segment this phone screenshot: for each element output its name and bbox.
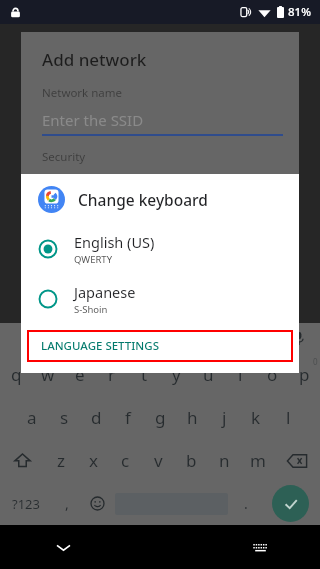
staticText: f <box>125 406 131 429</box>
staticText: ?123 <box>12 495 40 513</box>
staticText: a <box>27 406 37 429</box>
button[interactable]: English (US) <box>21 224 299 274</box>
staticText: v <box>154 449 163 472</box>
staticText: o <box>267 363 278 386</box>
button[interactable]: s <box>48 396 80 439</box>
button[interactable]: Enter <box>272 485 309 522</box>
staticText: 4 <box>121 356 126 367</box>
staticText: r <box>108 363 116 386</box>
button[interactable]: ?123 <box>0 482 52 525</box>
button[interactable]: Shift <box>0 439 45 482</box>
button[interactable]: t <box>128 353 160 396</box>
staticText: x <box>89 449 98 472</box>
staticText: p <box>299 363 310 386</box>
staticText: g <box>155 406 166 429</box>
staticText: 6 <box>185 356 190 367</box>
staticText: l <box>286 406 291 429</box>
button[interactable]: c <box>109 439 142 482</box>
button[interactable]: n <box>208 439 241 482</box>
staticText: LANGUAGE SETTINGS <box>41 338 159 354</box>
button[interactable]: h <box>176 396 208 439</box>
button[interactable]: y <box>160 353 192 396</box>
staticText: j <box>222 406 227 429</box>
staticText: English (US) <box>74 232 155 252</box>
staticText: 81% <box>288 4 311 20</box>
staticText: Enter the SSID <box>42 110 144 130</box>
button[interactable]: b <box>175 439 208 482</box>
staticText: Change keyboard <box>78 189 208 210</box>
button[interactable]: l <box>272 396 304 439</box>
staticText: , <box>65 494 69 513</box>
button[interactable]: z <box>45 439 77 482</box>
button[interactable]: r <box>96 353 128 396</box>
button[interactable]: a <box>16 396 48 439</box>
staticText: k <box>251 406 261 429</box>
staticText: Network name <box>42 85 123 101</box>
button[interactable]: o <box>256 353 288 396</box>
staticText: h <box>187 406 198 429</box>
staticText: 5 <box>153 356 158 367</box>
button[interactable]: i <box>224 353 256 396</box>
staticText: 3 <box>89 356 94 367</box>
staticText: 1 <box>25 356 30 367</box>
staticText: t <box>141 363 148 386</box>
button[interactable]: x <box>77 439 109 482</box>
button[interactable]: LANGUAGE SETTINGS <box>27 330 293 362</box>
staticText: y <box>172 363 181 386</box>
staticText: c <box>121 449 130 472</box>
staticText: 9 <box>281 356 286 367</box>
staticText: Japanese <box>74 282 136 302</box>
staticText: 2 <box>57 356 62 367</box>
button[interactable]: k <box>240 396 272 439</box>
staticText: . <box>244 494 248 513</box>
button[interactable]: Emoji <box>82 482 112 525</box>
staticText: b <box>186 449 197 472</box>
staticText: 7 <box>217 356 222 367</box>
staticText: QWERTY <box>74 253 113 266</box>
button[interactable]: j <box>208 396 240 439</box>
button[interactable]: m <box>241 439 274 482</box>
staticText: i <box>238 363 243 386</box>
button[interactable]: Hide keyboard <box>48 532 78 562</box>
staticText: n <box>219 449 230 472</box>
button[interactable]: f <box>112 396 144 439</box>
staticText: u <box>203 363 214 386</box>
staticText: w <box>41 363 55 386</box>
staticText: Add network <box>42 48 147 71</box>
staticText: m <box>250 449 266 472</box>
button[interactable]: Switch keyboard <box>245 532 275 562</box>
staticText: q <box>11 363 22 386</box>
button[interactable]: q <box>0 353 32 396</box>
button[interactable]: e <box>64 353 96 396</box>
staticText: Security <box>42 149 86 165</box>
button[interactable]: Backspace <box>274 439 320 482</box>
button[interactable]: p <box>288 353 320 396</box>
button[interactable]: v <box>142 439 175 482</box>
button[interactable]: w <box>32 353 64 396</box>
button[interactable]: d <box>80 396 112 439</box>
staticText: s <box>60 406 69 429</box>
staticText: S-Shoin <box>74 303 108 316</box>
staticText: d <box>91 406 102 429</box>
staticText: e <box>75 363 85 386</box>
button[interactable]: g <box>144 396 176 439</box>
staticText: 8 <box>249 356 254 367</box>
staticText: z <box>57 449 65 472</box>
button[interactable]: Japanese <box>21 274 299 324</box>
button[interactable]: u <box>192 353 224 396</box>
staticText: 0 <box>313 356 318 367</box>
